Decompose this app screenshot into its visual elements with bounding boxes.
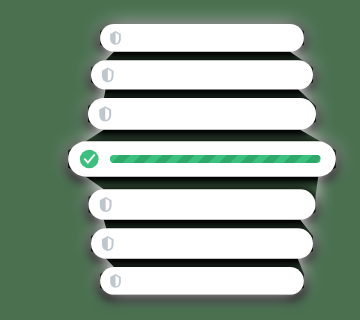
button[interactable]: [0, 0, 360, 320]
